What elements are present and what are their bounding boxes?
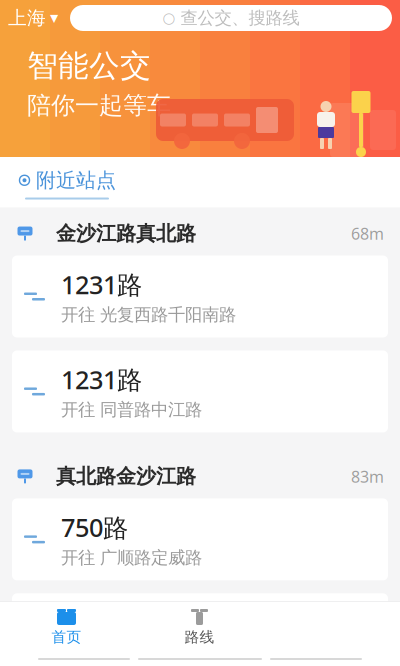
button[interactable]: 首页 xyxy=(0,602,133,652)
staticText: ▼ xyxy=(50,12,58,24)
staticText: ○ xyxy=(162,10,175,26)
staticText: 83m xyxy=(351,466,384,487)
button[interactable]: 750路 xyxy=(12,498,388,580)
staticText: 1231路 xyxy=(61,268,142,301)
staticText: 路线 xyxy=(184,628,214,646)
staticText: 金沙江路真北路 xyxy=(56,221,196,246)
staticText: 首页 xyxy=(51,628,81,646)
staticText: 开往 光复西路千阳南路 xyxy=(61,304,236,325)
staticText: 开往 同普路中江路 xyxy=(61,399,202,420)
staticText: 上海 xyxy=(8,6,46,29)
button[interactable]: 路线 xyxy=(133,602,266,652)
staticText: 查公交、搜路线 xyxy=(180,7,299,29)
staticText: 智能公交 xyxy=(27,47,151,85)
staticText: 开往 广顺路定威路 xyxy=(61,547,202,568)
staticText: 750路 xyxy=(61,510,128,544)
button[interactable]: 上海 xyxy=(8,6,58,29)
staticText: 1231路 xyxy=(61,362,142,396)
button[interactable]: ○ xyxy=(70,5,392,31)
staticText: 68m xyxy=(351,223,384,244)
staticText: 附近站点 xyxy=(36,168,116,193)
staticText: 陪你一起等车 xyxy=(27,91,171,120)
button[interactable]: 金沙江路真北路 xyxy=(0,214,400,254)
button[interactable]: 106路 xyxy=(12,593,388,666)
button[interactable]: 真北路金沙江路 xyxy=(0,456,400,496)
button[interactable]: 1231路 xyxy=(12,350,388,432)
staticText: 106路 xyxy=(61,605,128,639)
staticText: 真北路金沙江路 xyxy=(56,464,196,489)
button[interactable]: 1231路 xyxy=(12,256,388,337)
staticText: 开往 中山北路江宁路 xyxy=(61,642,219,663)
button[interactable]: 附近站点 xyxy=(18,157,116,200)
